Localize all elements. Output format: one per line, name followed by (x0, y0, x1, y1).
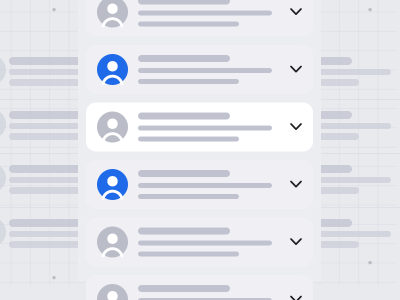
button[interactable]: Contact row (86, 0, 313, 36)
button[interactable]: Contact row (86, 217, 313, 266)
button[interactable]: Contact row (86, 45, 313, 94)
button[interactable]: Contact row (86, 102, 313, 151)
button[interactable]: Contact row (86, 160, 313, 209)
button[interactable]: Contact row (86, 275, 313, 300)
